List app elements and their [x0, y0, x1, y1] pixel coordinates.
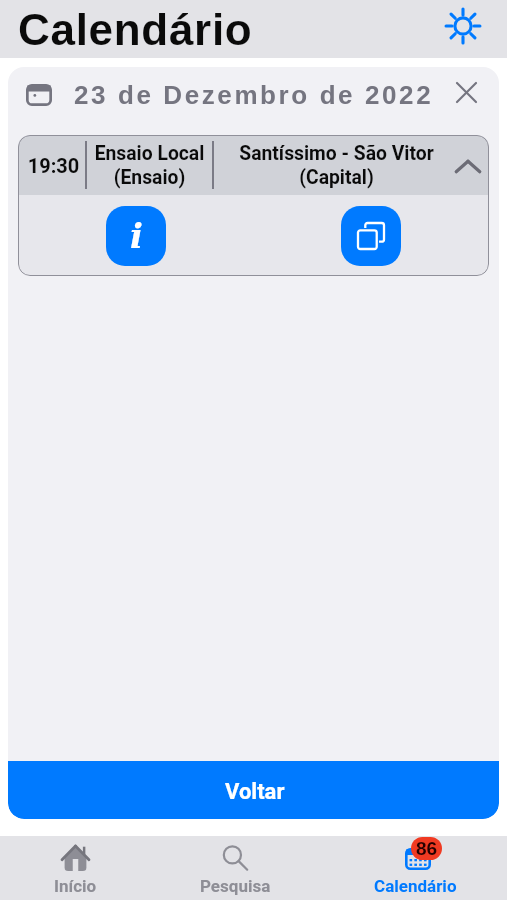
button[interactable]: Close [446, 72, 486, 112]
staticText: Santíssimo - São Vitor (Capital) [214, 142, 459, 189]
button[interactable]: Pesquisa [180, 836, 290, 900]
staticText: Pesquisa [200, 876, 271, 896]
button[interactable]: Information [106, 206, 166, 266]
button[interactable]: 86 [360, 836, 470, 900]
staticText: i [130, 216, 143, 256]
button[interactable]: Brightness [439, 2, 487, 50]
staticText: Ensaio Local (Ensaio) [87, 142, 212, 189]
staticText: 19:30 [20, 154, 87, 177]
button[interactable]: Voltar [8, 761, 499, 819]
staticText: Calendário [374, 876, 457, 896]
button[interactable]: 19:30 [18, 135, 489, 195]
button[interactable]: Duplicate [341, 206, 401, 266]
staticText: 23 de Dezembro de 2022 [74, 80, 434, 109]
staticText: Calendário [18, 5, 253, 54]
staticText: Voltar [225, 779, 285, 805]
staticText: Início [54, 876, 97, 896]
staticText: 86 [416, 838, 438, 859]
button[interactable]: Início [20, 836, 130, 900]
